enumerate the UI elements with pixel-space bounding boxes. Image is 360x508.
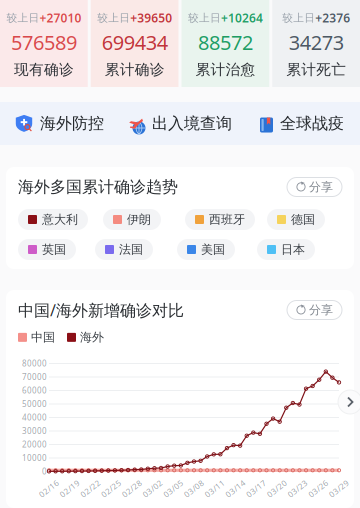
staticText: 88572 xyxy=(198,29,253,55)
staticText: 02/16 xyxy=(37,483,60,494)
staticText: +10264 xyxy=(221,10,263,26)
staticText: 02/22 xyxy=(79,483,102,494)
button[interactable]: 下一张图表 xyxy=(338,390,360,414)
button[interactable]: 伊朗 xyxy=(103,209,161,230)
staticText: 较上日 xyxy=(6,11,39,24)
staticText: 海外多国累计确诊趋势 xyxy=(18,177,178,197)
staticText: 较上日 xyxy=(97,11,130,24)
button[interactable]: 法国 xyxy=(95,239,153,260)
staticText: 全球战疫 xyxy=(280,114,344,133)
staticText: 西班牙 xyxy=(209,212,245,227)
button[interactable]: 英国 xyxy=(18,239,76,260)
button[interactable]: 美国 xyxy=(177,239,235,260)
staticText: +27010 xyxy=(39,10,81,26)
staticText: 意大利 xyxy=(42,212,78,227)
button[interactable]: 全球战疫 xyxy=(255,114,344,133)
staticText: 03/02 xyxy=(141,483,164,494)
button[interactable]: 分享 xyxy=(287,177,342,196)
staticText: 海外防控 xyxy=(40,114,104,133)
staticText: 日本 xyxy=(281,242,305,257)
staticText: 34273 xyxy=(289,29,344,55)
staticText: 分享 xyxy=(309,180,333,194)
staticText: 伊朗 xyxy=(127,212,151,227)
staticText: 03/17 xyxy=(245,483,268,494)
staticText: 美国 xyxy=(201,242,225,257)
button[interactable]: 分享 xyxy=(287,300,342,319)
staticText: 累计确诊 xyxy=(105,60,165,78)
button[interactable]: 德国 xyxy=(267,209,325,230)
staticText: 30000 xyxy=(22,426,47,436)
staticText: 累计治愈 xyxy=(195,60,255,78)
staticText: 03/23 xyxy=(286,483,309,494)
staticText: 0 xyxy=(42,466,47,477)
staticText: 03/11 xyxy=(203,483,226,494)
button[interactable]: 日本 xyxy=(257,239,315,260)
staticText: 02/25 xyxy=(100,483,123,494)
staticText: 中国/海外新增确诊对比 xyxy=(18,299,184,321)
staticText: 较上日 xyxy=(282,11,315,24)
staticText: 较上日 xyxy=(188,11,221,24)
staticText: +2376 xyxy=(315,10,350,26)
staticText: 03/20 xyxy=(265,483,288,494)
staticText: 576589 xyxy=(11,29,77,55)
staticText: 03/26 xyxy=(307,483,330,494)
staticText: 英国 xyxy=(42,242,66,257)
button[interactable]: 出入境查询 xyxy=(127,114,232,133)
button[interactable]: 意大利 xyxy=(18,209,88,230)
staticText: 699434 xyxy=(102,29,168,55)
staticText: 03/14 xyxy=(224,483,247,494)
staticText: 10000 xyxy=(22,453,47,463)
staticText: 德国 xyxy=(291,212,315,227)
button[interactable]: 海外防控 xyxy=(15,114,104,133)
staticText: 中国 xyxy=(31,330,55,345)
staticText: 法国 xyxy=(119,242,143,257)
staticText: 海外 xyxy=(80,330,104,345)
staticText: 60000 xyxy=(22,385,47,396)
staticText: 03/29 xyxy=(327,483,350,494)
staticText: 出入境查询 xyxy=(152,114,232,133)
staticText: 累计死亡 xyxy=(286,60,346,78)
staticText: 50000 xyxy=(22,399,47,409)
staticText: 40000 xyxy=(22,412,47,423)
staticText: 02/19 xyxy=(58,483,81,494)
staticText: 分享 xyxy=(309,303,333,317)
staticText: 03/08 xyxy=(182,483,205,494)
staticText: 03/05 xyxy=(162,483,185,494)
staticText: 现有确诊 xyxy=(14,60,74,78)
staticText: 80000 xyxy=(22,358,47,369)
staticText: 02/28 xyxy=(120,483,143,494)
button[interactable]: 西班牙 xyxy=(185,209,255,230)
staticText: 20000 xyxy=(22,439,47,450)
staticText: 70000 xyxy=(22,372,47,382)
staticText: +39650 xyxy=(130,10,172,26)
